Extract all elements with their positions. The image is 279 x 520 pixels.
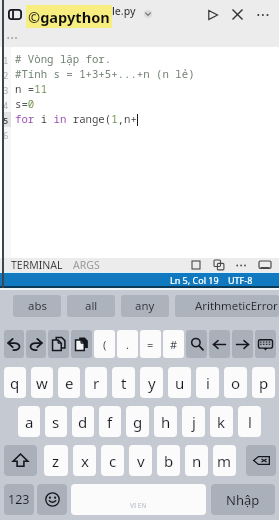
button[interactable]: q	[4, 367, 26, 398]
staticText: 6	[3, 129, 9, 141]
staticText: Nhập	[226, 491, 260, 509]
button[interactable]: UTF-8	[226, 274, 255, 286]
button[interactable]: Breadcrumbs	[7, 31, 21, 45]
button[interactable]: Editor key	[4, 330, 24, 358]
staticText: #Tính s = 1+3+5+...+n (n lẻ)	[15, 67, 195, 82]
button[interactable]: p	[252, 367, 275, 398]
button[interactable]: y	[140, 367, 163, 398]
button[interactable]: d	[72, 406, 94, 437]
staticText: #	[170, 337, 178, 352]
button[interactable]: Shift	[4, 445, 37, 476]
button[interactable]: w	[31, 367, 53, 398]
button[interactable]: Space	[71, 484, 206, 515]
button[interactable]: t	[112, 367, 135, 398]
staticText: ArithmeticError	[195, 298, 278, 314]
button[interactable]: j	[182, 406, 205, 437]
button[interactable]: Editor key	[186, 330, 207, 358]
button[interactable]: n	[185, 445, 208, 476]
staticText: l	[248, 412, 252, 432]
button[interactable]: Editor key	[232, 330, 253, 358]
button[interactable]: =	[140, 330, 161, 358]
button[interactable]: ARGS	[72, 258, 101, 272]
staticText: x	[81, 451, 89, 471]
staticText: a	[25, 412, 34, 432]
staticText: q	[10, 373, 20, 393]
button[interactable]: any	[121, 295, 169, 317]
button[interactable]: #	[163, 330, 184, 358]
staticText: b	[164, 451, 174, 471]
staticText: for i in range(1,n+	[15, 112, 137, 127]
staticText: .	[126, 337, 129, 352]
staticText: 1	[3, 54, 9, 66]
button[interactable]: g	[126, 406, 149, 437]
button[interactable]: Editor key	[255, 330, 276, 358]
button[interactable]: Editor key	[48, 330, 69, 358]
button[interactable]: a	[18, 406, 40, 437]
button[interactable]: abs	[13, 295, 61, 317]
staticText: m	[217, 451, 232, 471]
button[interactable]: Editor key	[71, 330, 92, 358]
button[interactable]: ArithmeticError	[175, 295, 279, 317]
button[interactable]: c	[101, 445, 124, 476]
staticText: =	[147, 337, 154, 352]
staticText: ©gapython	[28, 7, 110, 27]
staticText: all	[85, 298, 98, 314]
staticText: j	[192, 412, 196, 432]
button[interactable]: e	[58, 367, 80, 398]
button[interactable]: Toggle sidebar	[8, 7, 23, 22]
button[interactable]: Emoji	[37, 484, 67, 515]
button[interactable]: Split panel	[207, 258, 230, 272]
button[interactable]: Ln 5, Col 19	[168, 274, 221, 286]
button[interactable]: r	[85, 367, 107, 398]
staticText: p	[259, 373, 269, 393]
button[interactable]: Nhập	[211, 484, 275, 515]
button[interactable]: l	[238, 406, 261, 437]
staticText: h	[161, 412, 171, 432]
button[interactable]: i	[196, 367, 219, 398]
staticText: le.py	[112, 4, 136, 18]
staticText: t	[121, 373, 127, 393]
staticText: any	[135, 298, 155, 314]
button[interactable]: z	[44, 445, 68, 476]
staticText: 5	[3, 114, 9, 126]
staticText: s=0	[15, 97, 35, 112]
staticText: e	[65, 373, 74, 393]
staticText: TERMINAL	[11, 258, 63, 272]
staticText: i	[206, 373, 210, 393]
staticText: c	[109, 451, 117, 471]
button[interactable]: (	[94, 330, 115, 358]
button[interactable]: 123	[4, 484, 34, 515]
staticText: ARGS	[73, 258, 100, 272]
button[interactable]: x	[73, 445, 96, 476]
button[interactable]: b	[157, 445, 180, 476]
staticText: n	[192, 451, 202, 471]
button[interactable]: More actions	[250, 2, 275, 27]
button[interactable]: Tab options	[140, 6, 156, 22]
staticText: (	[103, 337, 107, 352]
button[interactable]: v	[129, 445, 152, 476]
button[interactable]: h	[154, 406, 177, 437]
staticText: n =11	[15, 82, 48, 97]
button[interactable]: Hide panel	[253, 258, 276, 272]
button[interactable]: Backspace	[246, 445, 276, 476]
staticText: VI EN	[130, 501, 147, 510]
button[interactable]: s	[45, 406, 67, 437]
button[interactable]: k	[210, 406, 233, 437]
staticText: k	[217, 412, 226, 432]
button[interactable]: Run	[200, 2, 225, 27]
button[interactable]: m	[213, 445, 236, 476]
button[interactable]: Maximize panel	[184, 258, 207, 272]
button[interactable]: .	[117, 330, 138, 358]
button[interactable]: o	[224, 367, 247, 398]
button[interactable]: all	[67, 295, 115, 317]
button[interactable]: ©gapython	[26, 5, 112, 28]
button[interactable]: TERMINAL	[10, 258, 64, 272]
button[interactable]: More panel actions	[230, 258, 253, 272]
button[interactable]: Close	[225, 2, 250, 27]
button[interactable]: f	[99, 406, 121, 437]
button[interactable]: u	[168, 367, 191, 398]
staticText: 2	[3, 69, 9, 81]
button[interactable]: Editor key	[26, 330, 46, 358]
button[interactable]: Editor key	[209, 330, 230, 358]
staticText: v	[137, 451, 145, 471]
